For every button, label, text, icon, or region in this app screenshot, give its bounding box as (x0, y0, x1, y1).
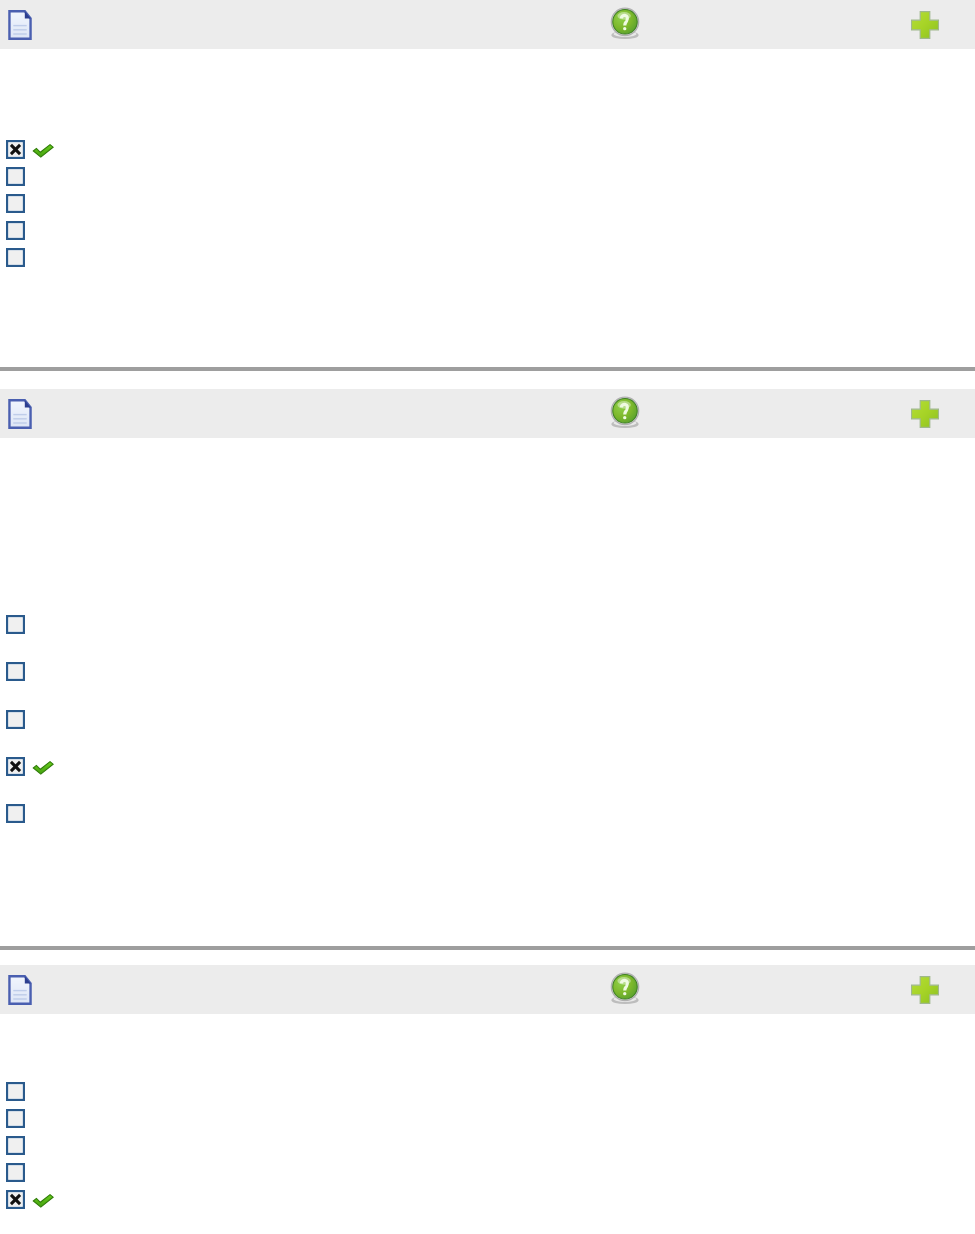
button[interactable] (6, 1190, 60, 1210)
button[interactable] (6, 1163, 25, 1183)
button[interactable] (6, 167, 25, 187)
button[interactable]: Add (909, 974, 941, 1006)
button[interactable] (6, 710, 25, 730)
button[interactable]: Add (909, 9, 941, 41)
button[interactable] (6, 615, 25, 635)
button[interactable]: Help (608, 395, 642, 431)
button[interactable] (6, 1109, 25, 1129)
button[interactable] (6, 221, 25, 241)
button[interactable]: Help (608, 971, 642, 1007)
button[interactable] (6, 1082, 25, 1102)
button[interactable] (6, 804, 25, 824)
button[interactable]: Help (608, 6, 642, 42)
button[interactable]: Add (909, 398, 941, 430)
button[interactable] (6, 1136, 25, 1156)
button[interactable]: Document (8, 975, 32, 1005)
button[interactable] (6, 662, 25, 682)
button[interactable]: Document (8, 10, 32, 40)
button[interactable] (6, 140, 60, 160)
button[interactable] (6, 757, 60, 777)
button[interactable] (6, 194, 25, 214)
button[interactable] (6, 248, 25, 268)
button[interactable]: Document (8, 399, 32, 429)
